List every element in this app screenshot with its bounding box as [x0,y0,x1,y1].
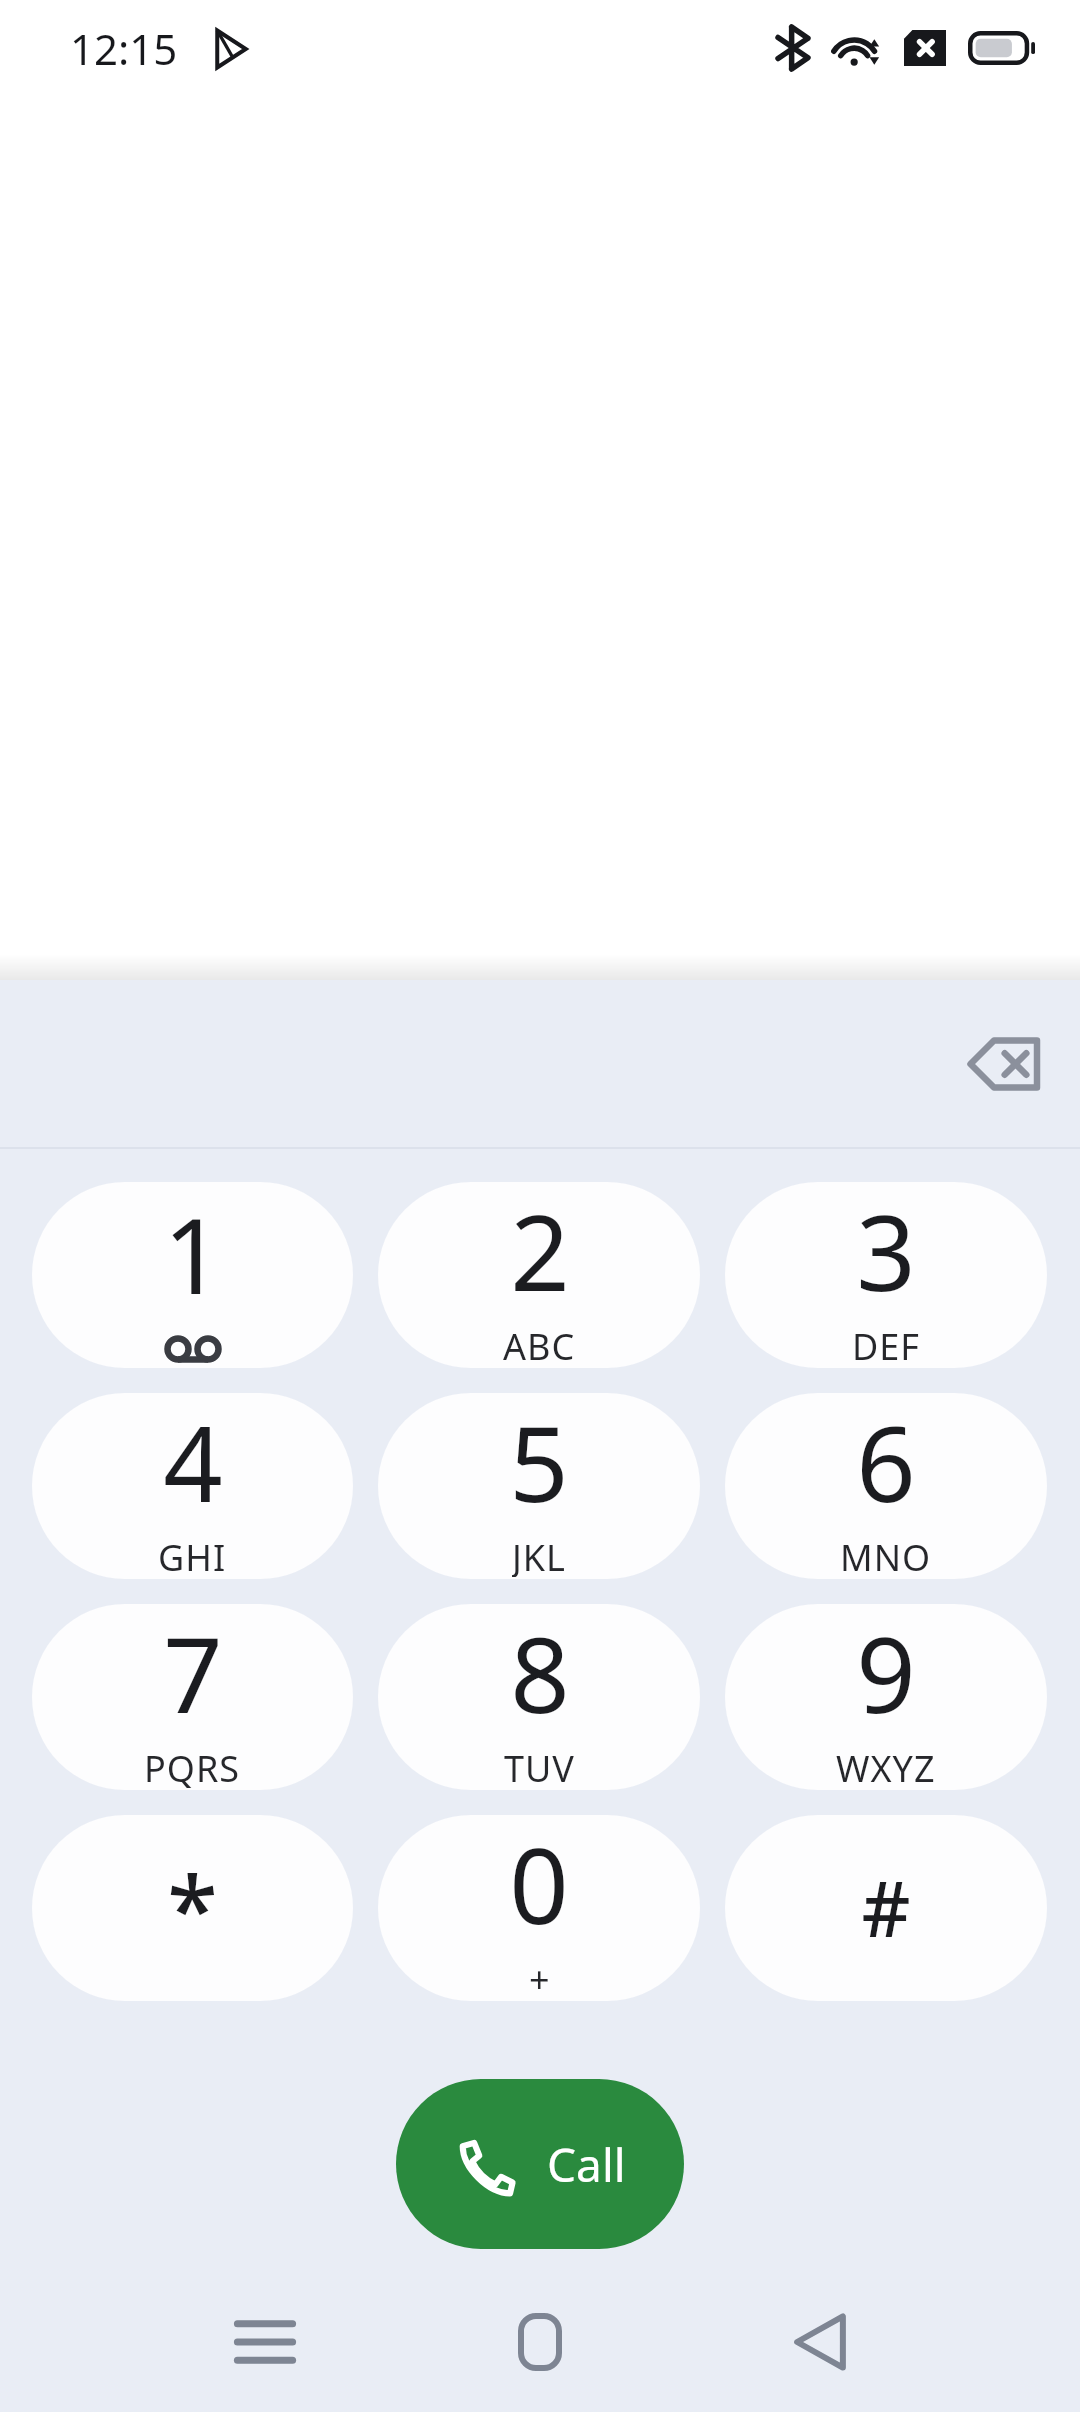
staticText: # [861,1856,911,1960]
staticText: JKL [512,1533,566,1577]
staticText: PQRS [144,1744,241,1788]
staticText: MNO [840,1533,932,1577]
button[interactable]: 5 [378,1393,700,1579]
staticText: 8 [510,1604,570,1744]
button[interactable]: 2 [378,1182,700,1368]
button[interactable]: Backspace [954,1014,1054,1114]
button[interactable]: 9 [725,1604,1047,1790]
button[interactable]: 4 [32,1393,353,1579]
staticText: 1 [163,1183,223,1325]
staticText: TUV [504,1744,575,1788]
button[interactable]: Back [760,2282,880,2402]
staticText: Call [547,2133,626,2196]
button[interactable]: 6 [725,1393,1047,1579]
button[interactable]: 0 [378,1815,700,2001]
button[interactable]: 8 [378,1604,700,1790]
staticText: ABC [503,1322,576,1366]
button[interactable]: * [32,1815,353,2001]
button[interactable]: 7 [32,1604,353,1790]
staticText: 0 [509,1815,569,1955]
staticText: WXYZ [836,1744,936,1788]
button[interactable]: # [725,1815,1047,2001]
button[interactable]: Call [396,2079,684,2249]
staticText: 7 [163,1604,223,1744]
staticText: 5 [509,1393,569,1533]
staticText: + [529,1955,550,1999]
button[interactable]: 1 [32,1182,353,1368]
staticText: 9 [856,1604,916,1744]
button[interactable]: 3 [725,1182,1047,1368]
staticText: 4 [163,1393,223,1533]
button[interactable]: Home [480,2282,600,2402]
staticText: 12:15 [70,20,178,77]
staticText: * [167,1846,218,1971]
staticText: 3 [856,1182,916,1322]
staticText: 2 [510,1182,570,1322]
staticText: 6 [856,1393,916,1533]
staticText: DEF [852,1322,920,1366]
button[interactable]: Recent apps [205,2282,325,2402]
staticText: GHI [158,1533,227,1577]
